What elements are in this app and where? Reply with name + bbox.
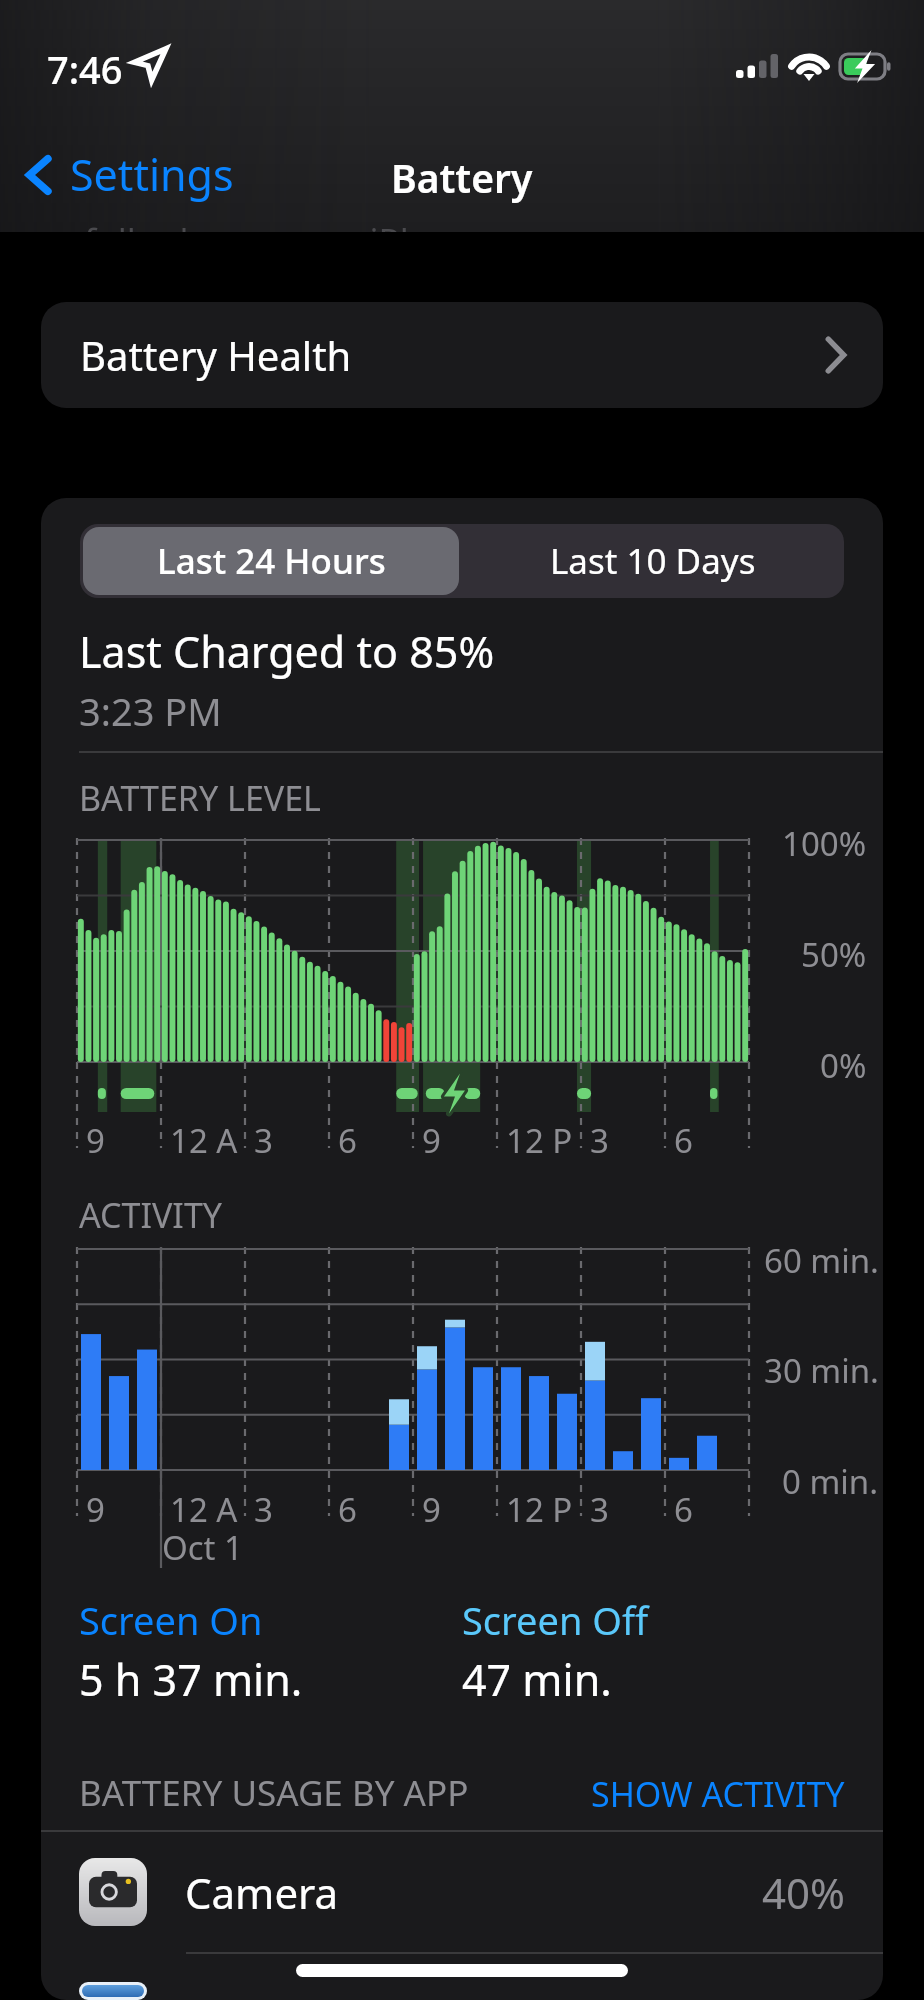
button[interactable]: Battery Health [41, 302, 883, 408]
staticText: Settings [70, 145, 234, 204]
staticText: 12 A [170, 1487, 238, 1532]
staticText: 12 P [506, 1118, 573, 1163]
staticText: BATTERY USAGE BY APP [79, 1769, 469, 1817]
staticText: 12 P [506, 1487, 573, 1532]
staticText: 100% [782, 821, 867, 866]
staticText: SHOW ACTIVITY [591, 1771, 845, 1817]
staticText: 6 [338, 1487, 357, 1532]
staticText: Screen Off [462, 1594, 649, 1646]
staticText: Last Charged to 85% [79, 622, 495, 681]
staticText: 3 [590, 1487, 609, 1532]
staticText: fully charge your iPhone. [84, 217, 494, 232]
staticText: 3 [254, 1118, 273, 1163]
button[interactable]: App battery usage [41, 1982, 883, 2000]
staticText: 0% [820, 1043, 867, 1088]
staticText: 9 [422, 1118, 441, 1163]
staticText: 9 [86, 1118, 105, 1163]
staticText: 9 [422, 1487, 441, 1532]
staticText: 6 [338, 1118, 357, 1163]
staticText: 6 [674, 1118, 693, 1163]
staticText: 3 [590, 1118, 609, 1163]
staticText: 60 min. [764, 1238, 879, 1283]
staticText: 3 [254, 1487, 273, 1532]
staticText: Last 10 Days [550, 537, 756, 585]
staticText: Screen On [79, 1594, 263, 1646]
staticText: Oct 1 [162, 1525, 243, 1570]
staticText: ACTIVITY [79, 1192, 223, 1238]
staticText: 9 [86, 1487, 105, 1532]
staticText: Battery [391, 151, 533, 204]
staticText: 3:23 PM [79, 685, 222, 737]
button[interactable]: SHOW ACTIVITY [591, 1769, 845, 1819]
staticText: BATTERY LEVEL [79, 775, 321, 821]
staticText: 7:46 [47, 43, 123, 95]
button[interactable]: Last 10 Days [462, 524, 844, 598]
staticText: 0 min. [782, 1459, 879, 1504]
staticText: 6 [674, 1487, 693, 1532]
staticText: Last 24 Hours [157, 537, 386, 585]
button[interactable]: Camera [41, 1832, 883, 1952]
staticText: 40% [762, 1864, 845, 1921]
staticText: 47 min. [462, 1650, 612, 1709]
button[interactable]: Last 24 Hours [83, 527, 459, 595]
staticText: 30 min. [764, 1348, 879, 1393]
staticText: 12 A [170, 1118, 238, 1163]
button[interactable]: Back to Settings [21, 139, 238, 210]
staticText: 50% [801, 932, 867, 977]
staticText: 5 h 37 min. [79, 1650, 303, 1709]
staticText: Camera [185, 1864, 339, 1921]
staticText: Battery Health [80, 328, 352, 382]
